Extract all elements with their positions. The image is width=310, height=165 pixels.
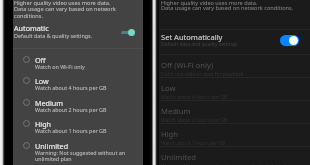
button[interactable]: Unlimited: [159, 146, 310, 165]
staticText: Automatic: [14, 23, 49, 33]
staticText: Default data & quality settings.: [14, 32, 93, 39]
button[interactable]: Medium: [159, 100, 310, 123]
button[interactable]: Unlimited: [13, 135, 143, 156]
staticText: Watch on Wi-Fi only: [35, 63, 85, 70]
staticText: Medium: [35, 98, 64, 108]
staticText: Don't use cellular data for playback: [161, 71, 244, 77]
button[interactable]: Set Automatically: [159, 30, 310, 54]
button[interactable]: Low: [159, 77, 310, 100]
staticText: Unlimited: [35, 141, 69, 151]
staticText: Watch about 1 hour per GB: [161, 140, 225, 146]
staticText: Watch about 4 hours per GB: [161, 94, 228, 100]
button[interactable]: High: [13, 113, 143, 134]
staticText: Watch about 1 hours per GB: [35, 127, 107, 134]
staticText: Higher quality video uses more data. Dat…: [14, 0, 116, 20]
staticText: Watch about 4 hours per GB: [35, 84, 107, 91]
staticText: Low: [161, 83, 176, 93]
button[interactable]: Low: [13, 70, 143, 91]
staticText: High: [35, 119, 52, 129]
staticText: Medium: [161, 106, 191, 116]
staticText: Low: [35, 76, 49, 86]
staticText: Warning: Not suggested without an unlimi…: [35, 149, 126, 163]
button[interactable]: High: [159, 123, 310, 146]
button[interactable]: [280, 35, 299, 46]
staticText: Unlimited: [161, 152, 196, 162]
staticText: Default data and quality settings: [161, 41, 238, 48]
staticText: Off (Wi-Fi only): [161, 60, 214, 70]
staticText: Off: [35, 55, 46, 65]
button[interactable]: Automatic: [13, 24, 143, 48]
staticText: Watch about 2 hours per GB: [35, 106, 107, 113]
button[interactable]: Off (Wi-Fi only): [159, 54, 310, 77]
button[interactable]: Medium: [13, 92, 143, 113]
staticText: Watch about 2 hours per GB: [161, 117, 228, 123]
button[interactable]: Off: [13, 49, 143, 70]
staticText: High: [161, 129, 178, 139]
staticText: Set Automatically: [161, 32, 223, 42]
staticText: Higher quality video uses more data. Dat…: [161, 0, 294, 12]
